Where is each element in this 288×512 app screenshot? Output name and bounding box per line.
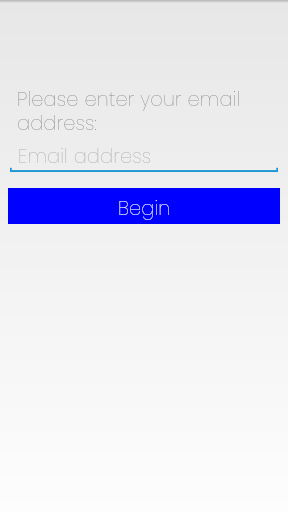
staticText: Email address	[18, 143, 152, 170]
button[interactable]: Begin	[8, 188, 280, 224]
staticText: Begin	[118, 195, 171, 222]
button[interactable]: Email address input	[10, 144, 278, 172]
staticText: Please enter your email address:	[17, 86, 269, 137]
